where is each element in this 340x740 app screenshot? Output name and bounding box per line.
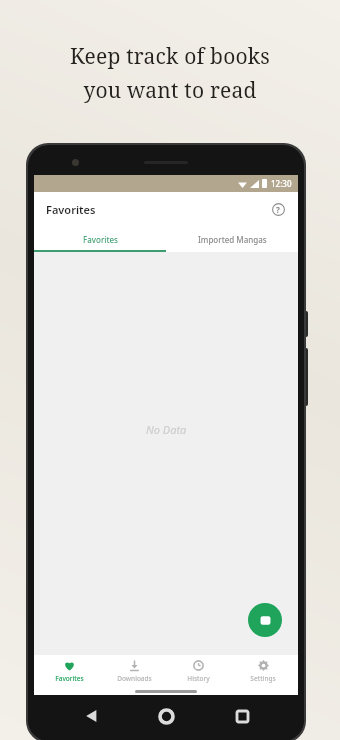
button[interactable]: Downloads: [105, 660, 163, 683]
button[interactable]: Help: [268, 199, 288, 219]
button[interactable]: Back: [78, 703, 104, 729]
button[interactable]: Settings: [234, 660, 292, 683]
staticText: Imported Mangas: [198, 234, 267, 245]
button[interactable]: Add book: [248, 603, 282, 637]
staticText: Favorites: [55, 674, 84, 683]
staticText: Favorites: [46, 202, 96, 217]
staticText: Favorites: [83, 234, 118, 245]
button[interactable]: Home: [153, 703, 179, 729]
button[interactable]: Favorites: [34, 226, 166, 252]
staticText: Downloads: [117, 674, 152, 683]
button[interactable]: Imported Mangas: [166, 226, 298, 252]
staticText: ?: [276, 204, 280, 215]
staticText: Keep track of books: [70, 42, 270, 71]
staticText: History: [187, 674, 210, 683]
staticText: Settings: [250, 674, 276, 683]
staticText: No Data: [146, 422, 187, 437]
button[interactable]: Favorites: [40, 660, 98, 683]
button[interactable]: Recents: [229, 703, 255, 729]
staticText: 12:30: [271, 178, 292, 189]
button[interactable]: History: [169, 660, 227, 683]
staticText: you want to read: [83, 76, 257, 105]
